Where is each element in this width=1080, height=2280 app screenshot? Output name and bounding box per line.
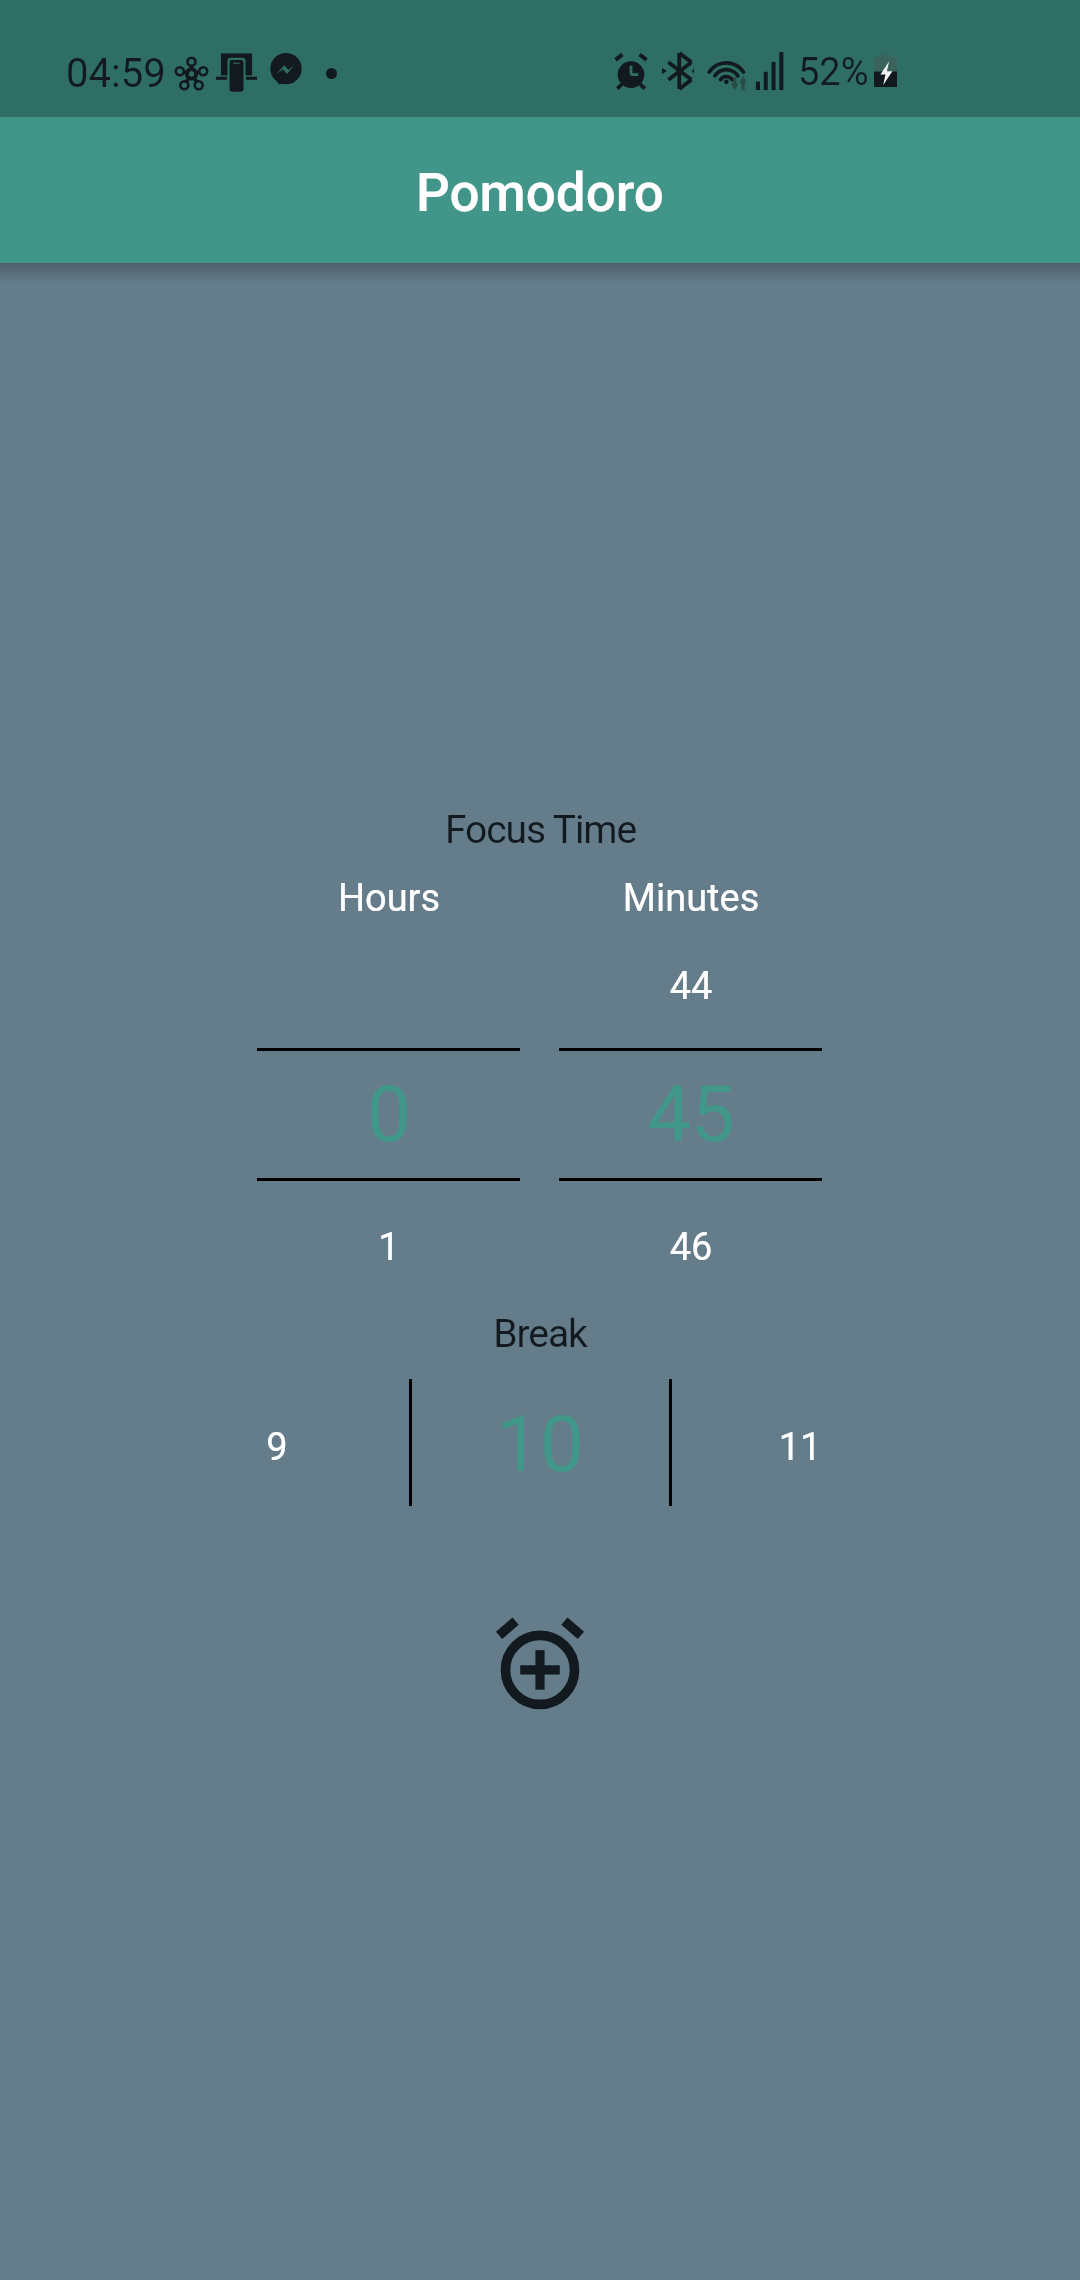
button[interactable]: Hours picker, 0 (257, 870, 520, 1270)
staticText: Hours (239, 876, 539, 921)
staticText: 45 (541, 1069, 841, 1160)
button[interactable]: Set alarm (485, 1608, 595, 1718)
staticText: Pomodoro (416, 162, 664, 224)
staticText: 0 (239, 1069, 539, 1160)
staticText: 46 (541, 1225, 841, 1270)
staticText: 10 (390, 1399, 690, 1490)
button[interactable]: Break minutes picker, 10 (148, 1379, 932, 1506)
staticText: 9 (127, 1425, 427, 1470)
staticText: Minutes (541, 876, 841, 921)
staticText: Focus Time (445, 807, 636, 853)
button[interactable]: Minutes picker, 45 (559, 870, 822, 1270)
staticText: 11 (650, 1425, 950, 1470)
staticText: Break (493, 1311, 587, 1357)
staticText: 04:59 (66, 50, 166, 97)
staticText: 1 (239, 1225, 539, 1270)
staticText: 52% (798, 50, 869, 95)
staticText: 44 (541, 964, 841, 1009)
